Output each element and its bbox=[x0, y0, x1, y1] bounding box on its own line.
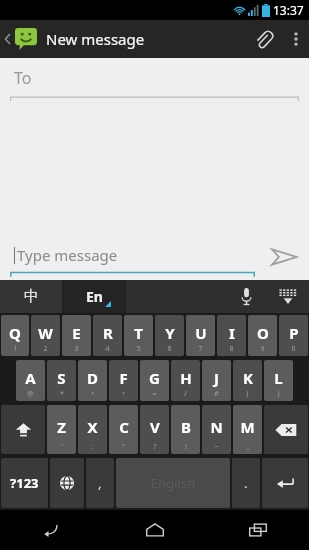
button[interactable]: X bbox=[78, 405, 107, 454]
staticText: P bbox=[289, 323, 299, 343]
staticText: @ bbox=[27, 389, 34, 399]
button[interactable]: L bbox=[264, 360, 293, 401]
button[interactable]: C bbox=[109, 405, 138, 454]
staticText: R bbox=[103, 323, 113, 343]
staticText: 7 bbox=[198, 344, 203, 354]
button[interactable]: D bbox=[78, 360, 107, 401]
button[interactable]: G bbox=[140, 360, 169, 401]
button[interactable]: Home bbox=[103, 510, 206, 550]
staticText: En bbox=[86, 287, 103, 306]
staticText: 2 bbox=[43, 344, 48, 354]
button[interactable]: Z bbox=[47, 405, 76, 454]
button[interactable]: More options bbox=[283, 20, 309, 58]
staticText: " bbox=[122, 442, 125, 452]
button[interactable]: Back bbox=[0, 510, 103, 550]
staticText: H bbox=[180, 368, 192, 388]
button[interactable]: . bbox=[232, 458, 260, 508]
staticText: = bbox=[152, 389, 157, 399]
button[interactable]: Voice input bbox=[225, 280, 267, 313]
staticText: ' bbox=[61, 442, 63, 452]
staticText: C bbox=[119, 417, 129, 437]
staticText: _ bbox=[246, 442, 250, 452]
staticText: ~ bbox=[214, 442, 219, 452]
staticText: K bbox=[243, 368, 253, 388]
button[interactable]: Attach bbox=[243, 20, 283, 58]
button[interactable]: K bbox=[233, 360, 262, 401]
button[interactable]: B bbox=[171, 405, 200, 454]
button[interactable]: P bbox=[279, 315, 308, 356]
staticText: V bbox=[150, 417, 160, 437]
button[interactable]: ?123 bbox=[1, 458, 48, 508]
staticText: ?123 bbox=[10, 474, 39, 492]
staticText: 1 bbox=[13, 344, 18, 354]
button[interactable]: J bbox=[202, 360, 231, 401]
button[interactable]: V bbox=[140, 405, 169, 454]
button[interactable]: Type message bbox=[0, 234, 259, 280]
button[interactable]: To bbox=[0, 58, 309, 102]
button[interactable]: 中 bbox=[0, 280, 62, 313]
button[interactable]: E bbox=[62, 315, 91, 356]
button[interactable]: R bbox=[93, 315, 122, 356]
staticText: New message bbox=[46, 29, 145, 49]
staticText: J bbox=[214, 368, 219, 388]
staticText: To bbox=[14, 67, 32, 89]
staticText: B bbox=[181, 417, 191, 437]
staticText: E bbox=[72, 323, 81, 343]
staticText: 5 bbox=[136, 344, 141, 354]
staticText: Y bbox=[165, 323, 175, 343]
staticText: 中 bbox=[24, 287, 39, 306]
button[interactable]: I bbox=[217, 315, 246, 356]
staticText: X bbox=[87, 417, 98, 437]
staticText: L bbox=[274, 368, 283, 388]
button[interactable]: T bbox=[124, 315, 153, 356]
button[interactable]: M bbox=[233, 405, 262, 454]
staticText: D bbox=[87, 368, 98, 388]
button[interactable]: Recent apps bbox=[206, 510, 309, 550]
button[interactable]: F bbox=[109, 360, 138, 401]
button[interactable]: H bbox=[171, 360, 200, 401]
staticText: English bbox=[151, 474, 196, 492]
button[interactable]: A bbox=[16, 360, 45, 401]
staticText: Type message bbox=[17, 245, 118, 265]
button[interactable]: S bbox=[47, 360, 76, 401]
staticText: W bbox=[38, 323, 53, 343]
button[interactable]: Navigate up bbox=[0, 28, 39, 50]
staticText: * bbox=[60, 389, 64, 399]
staticText: • bbox=[122, 389, 125, 399]
staticText: ) bbox=[277, 389, 280, 399]
button[interactable]: Change language bbox=[50, 458, 84, 508]
staticText: Q bbox=[9, 323, 21, 343]
staticText: 8 bbox=[229, 344, 234, 354]
staticText: 0 bbox=[291, 344, 296, 354]
button[interactable]: Enter bbox=[262, 458, 308, 508]
staticText: # bbox=[214, 389, 219, 399]
button[interactable]: Shift bbox=[1, 405, 45, 454]
button[interactable]: O bbox=[248, 315, 277, 356]
button[interactable]: , bbox=[86, 458, 114, 508]
button[interactable]: W bbox=[31, 315, 60, 356]
staticText: ( bbox=[246, 389, 249, 399]
button[interactable]: U bbox=[186, 315, 215, 356]
staticText: I bbox=[229, 323, 235, 343]
staticText: A bbox=[25, 368, 36, 388]
staticText: 6 bbox=[167, 344, 172, 354]
staticText: 4 bbox=[105, 344, 110, 354]
button[interactable]: Send bbox=[259, 234, 309, 280]
staticText: ! bbox=[185, 442, 187, 452]
button[interactable]: N bbox=[202, 405, 231, 454]
staticText: G bbox=[149, 368, 160, 388]
staticText: / bbox=[184, 389, 187, 399]
staticText: M bbox=[240, 417, 255, 437]
staticText: 13:37 bbox=[273, 2, 304, 18]
button[interactable]: Backspace bbox=[264, 405, 308, 454]
button[interactable]: Y bbox=[155, 315, 184, 356]
staticText: , bbox=[98, 474, 102, 492]
staticText: Z bbox=[57, 417, 66, 437]
staticText: U bbox=[195, 323, 207, 343]
button[interactable]: En bbox=[63, 280, 125, 313]
staticText: N bbox=[210, 417, 223, 437]
button[interactable]: Q bbox=[1, 315, 29, 356]
button[interactable]: Hide keyboard bbox=[267, 280, 309, 313]
